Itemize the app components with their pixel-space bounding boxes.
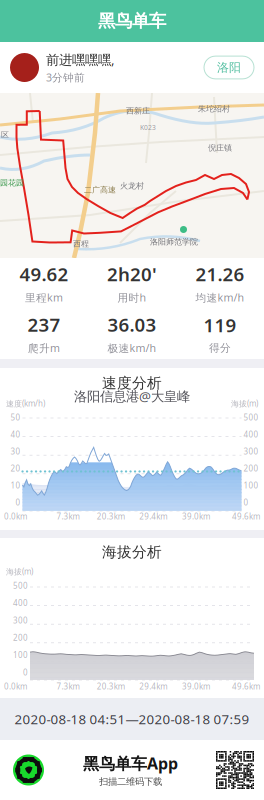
staticText: 海拔(m) [6, 566, 33, 577]
staticText: 极速km/h [107, 341, 156, 355]
staticText: 49.62 [19, 261, 68, 286]
staticText: 火龙村 [120, 181, 144, 191]
staticText: 区 [1, 130, 9, 140]
staticText: 29.4km [139, 681, 167, 692]
staticText: 500 [243, 412, 258, 423]
staticText: 爬升m [28, 341, 60, 355]
staticText: 49.6km [232, 681, 260, 692]
staticText: 119 [203, 313, 236, 337]
staticText: 40 [10, 429, 20, 440]
staticText: 黑鸟单车App [83, 753, 178, 774]
staticText: 2h20' [107, 261, 157, 286]
staticText: 黑鸟单车 [98, 10, 166, 32]
staticText: 海拔(m) [231, 398, 258, 409]
staticText: 均速km/h [195, 290, 244, 304]
staticText: 速度(km/h) [6, 398, 45, 409]
staticText: 39.0km [182, 511, 210, 522]
staticText: 100 [243, 480, 258, 491]
staticText: 50 [10, 412, 20, 423]
staticText: 里程km [25, 290, 63, 304]
staticText: 49.6km [232, 511, 260, 522]
staticText: 园花园 [0, 178, 24, 188]
staticText: 200 [243, 463, 258, 474]
staticText: 西新庄 [126, 106, 150, 116]
staticText: 30 [10, 446, 20, 457]
staticText: 237 [27, 312, 60, 337]
staticText: 倪庄镇 [208, 143, 232, 153]
staticText: 洛阳 [217, 60, 241, 75]
staticText: 洛阳师范学院 [150, 237, 198, 247]
staticText: 0 [23, 667, 28, 678]
staticText: 20.3km [97, 681, 125, 692]
staticText: 用时h [117, 290, 146, 304]
staticText: 20.3km [97, 511, 125, 522]
staticText: 21.26 [195, 261, 244, 286]
staticText: 得分 [209, 341, 231, 354]
staticText: 0 [15, 497, 20, 508]
staticText: 7.3km [56, 511, 79, 522]
staticText: 2020-08-18 04:51—2020-08-18 07:59 [14, 710, 249, 728]
staticText: 速度分析 [102, 374, 162, 392]
button[interactable]: 洛阳 [204, 56, 254, 79]
staticText: 0 [243, 497, 248, 508]
staticText: 西程 [73, 239, 89, 249]
staticText: 前进嘿嘿嘿, [46, 51, 115, 68]
staticText: 朱坨绍村 [198, 104, 230, 114]
staticText: 300 [243, 446, 258, 457]
staticText: 3分钟前 [46, 70, 85, 84]
staticText: 洛阳信息港@大皇峰 [74, 387, 190, 405]
staticText: 海拔分析 [102, 543, 162, 561]
staticText: 36.03 [107, 312, 156, 337]
staticText: 10 [10, 480, 20, 491]
staticText: 100 [13, 650, 28, 660]
staticText: 7.3km [56, 681, 79, 692]
staticText: 39.0km [182, 681, 210, 692]
staticText: 0.0km [4, 511, 27, 522]
staticText: 500 [13, 580, 28, 591]
staticText: 二广高速 [84, 185, 116, 195]
staticText: 0.0km [4, 681, 27, 692]
staticText: 20 [10, 463, 20, 474]
staticText: K023 [140, 123, 156, 132]
staticText: 300 [13, 615, 28, 626]
staticText: 400 [243, 429, 258, 440]
staticText: 400 [13, 598, 28, 608]
staticText: 200 [13, 632, 28, 643]
staticText: 扫描二维码下载 [99, 776, 162, 787]
staticText: 29.4km [139, 511, 167, 522]
